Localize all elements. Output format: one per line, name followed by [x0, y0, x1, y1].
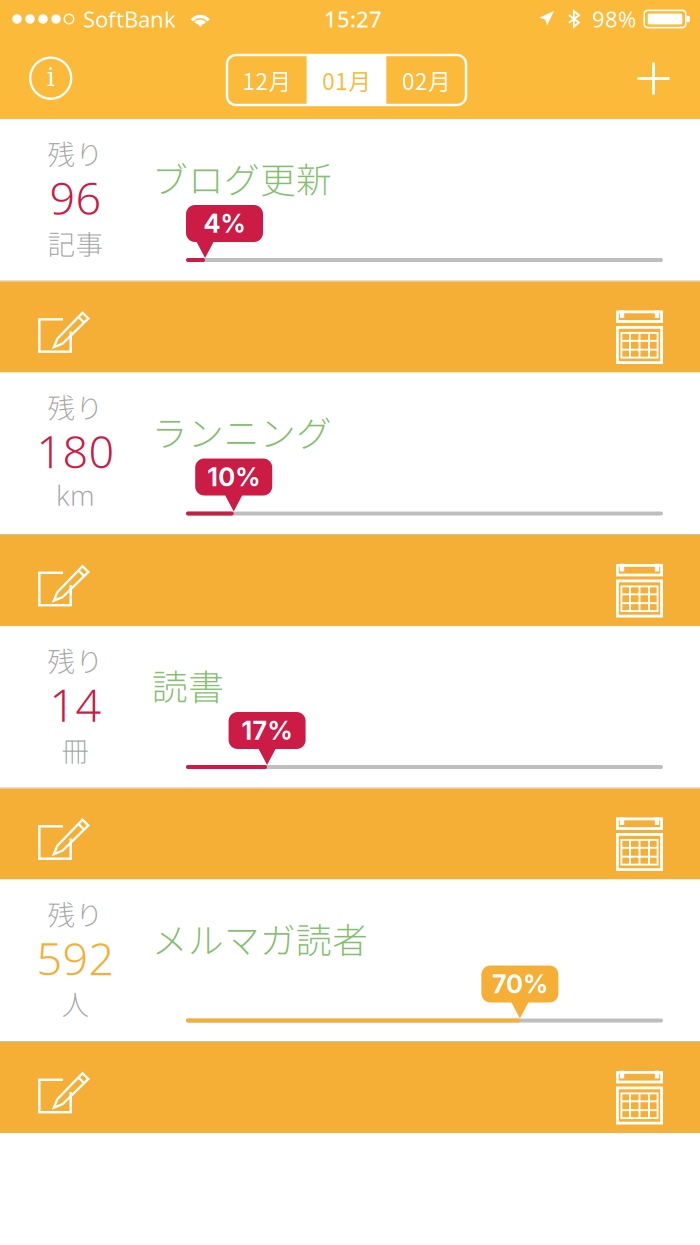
- staticText: 記事: [47, 223, 103, 263]
- staticText: 70%: [492, 969, 548, 999]
- staticText: 残り: [47, 133, 103, 173]
- button[interactable]: 12月: [227, 55, 307, 105]
- button[interactable]: Calendar: [609, 798, 670, 869]
- staticText: 残り: [47, 893, 103, 933]
- staticText: 残り: [47, 386, 103, 426]
- button[interactable]: Edit: [24, 302, 90, 361]
- button[interactable]: Add: [628, 53, 679, 104]
- staticText: ランニング: [152, 405, 332, 457]
- button[interactable]: 02月: [386, 55, 466, 105]
- button[interactable]: Calendar: [609, 1052, 670, 1123]
- button[interactable]: Edit: [24, 809, 90, 868]
- staticText: 01月: [322, 64, 371, 96]
- button[interactable]: Info: [22, 50, 79, 107]
- button[interactable]: Calendar: [609, 545, 670, 616]
- staticText: 180: [36, 420, 114, 481]
- staticText: メルマガ読者: [152, 912, 368, 964]
- button[interactable]: Edit: [24, 556, 90, 615]
- staticText: 592: [36, 927, 114, 988]
- staticText: 96: [49, 167, 101, 228]
- staticText: 12月: [242, 64, 291, 96]
- staticText: 02月: [402, 64, 451, 96]
- staticText: 読書: [152, 659, 224, 710]
- staticText: 10%: [207, 462, 260, 492]
- staticText: ブログ更新: [152, 152, 332, 203]
- staticText: km: [56, 476, 95, 514]
- staticText: 人: [61, 983, 89, 1023]
- staticText: i: [47, 62, 55, 92]
- staticText: 98%: [592, 4, 636, 34]
- staticText: 冊: [61, 730, 89, 770]
- button[interactable]: 01月: [307, 55, 386, 105]
- staticText: SoftBank: [83, 4, 176, 34]
- staticText: 17%: [242, 715, 293, 746]
- staticText: 15:27: [324, 4, 382, 34]
- button[interactable]: Edit: [24, 1063, 90, 1122]
- staticText: 残り: [47, 640, 103, 680]
- staticText: 14: [49, 674, 101, 735]
- staticText: 4%: [203, 208, 245, 239]
- button[interactable]: Calendar: [609, 291, 670, 362]
